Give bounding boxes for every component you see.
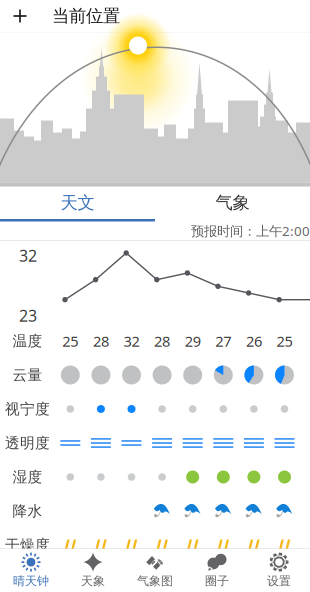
staticText: 天象 (81, 574, 105, 588)
staticText: 设置 (267, 574, 291, 588)
button[interactable]: Add location (0, 0, 40, 32)
button[interactable]: 圈子 (186, 549, 248, 592)
staticText: 28 (93, 331, 109, 351)
staticText: 预报时间：上午2:00 (191, 222, 310, 240)
staticText: 32 (123, 331, 139, 351)
button[interactable]: 设置 (248, 549, 310, 592)
button[interactable]: 气象图 (124, 549, 186, 592)
staticText: 透明度 (5, 434, 50, 452)
staticText: 26 (246, 331, 262, 351)
button[interactable]: 当前位置 (40, 0, 126, 35)
staticText: 29 (185, 331, 201, 351)
staticText: 降水 (12, 502, 42, 520)
staticText: 25 (62, 331, 78, 351)
staticText: 天文 (60, 192, 94, 213)
staticText: 气象 (215, 192, 249, 213)
staticText: 气象图 (137, 574, 173, 588)
button[interactable]: 天象 (62, 549, 124, 592)
button[interactable]: 气象 (155, 186, 310, 221)
staticText: 25 (276, 331, 292, 351)
staticText: 干燥度 (5, 536, 50, 554)
staticText: 温度 (12, 332, 42, 350)
staticText: 湿度 (12, 468, 42, 486)
staticText: 27 (215, 331, 231, 351)
staticText: 云量 (12, 366, 42, 384)
staticText: 圈子 (205, 574, 229, 588)
button[interactable]: 晴天钟 (0, 549, 62, 592)
staticText: 当前位置 (52, 5, 120, 27)
staticText: 32 (19, 245, 37, 266)
staticText: 晴天钟 (13, 574, 49, 588)
staticText: 28 (154, 331, 170, 351)
staticText: 视宁度 (5, 400, 50, 418)
staticText: 23 (19, 305, 37, 326)
button[interactable]: 天文 (0, 186, 155, 221)
